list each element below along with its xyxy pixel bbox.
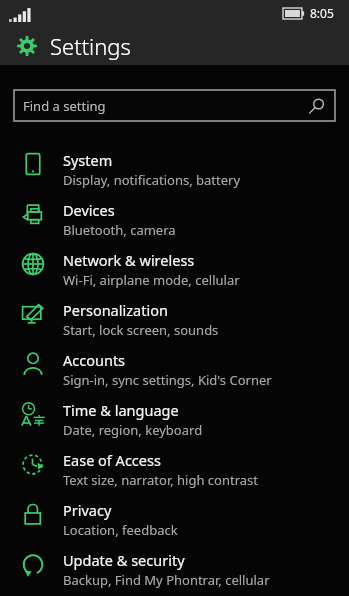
staticText: Display, notifications, battery <box>63 171 241 189</box>
staticText: Backup, Find My Phontrar, cellular <box>63 571 270 589</box>
staticText: Start, lock screen, sounds <box>63 321 219 339</box>
staticText: Wi-Fi, airplane mode, cellular <box>63 271 240 289</box>
staticText: Personalization <box>63 300 168 320</box>
staticText: Devices <box>63 200 115 220</box>
staticText: Privacy <box>63 500 112 520</box>
staticText: Update & security <box>63 550 185 570</box>
button[interactable]: Time & language <box>0 395 349 445</box>
button[interactable]: Update & security <box>0 545 349 595</box>
staticText: Accounts <box>63 350 126 370</box>
staticText: Time & language <box>63 400 179 420</box>
button[interactable]: Accounts <box>0 345 349 395</box>
staticText: Location, feedback <box>63 521 178 539</box>
staticText: Ease of Access <box>63 450 161 470</box>
staticText: Settings <box>50 31 131 61</box>
button[interactable]: Devices <box>0 195 349 245</box>
staticText: System <box>63 150 113 170</box>
staticText: Date, region, keyboard <box>63 421 203 439</box>
button[interactable]: Privacy <box>0 495 349 545</box>
staticText: Network & wireless <box>63 250 195 270</box>
button[interactable]: System <box>0 145 349 195</box>
staticText: Find a setting <box>23 97 106 115</box>
button[interactable]: Ease of Access <box>0 445 349 495</box>
staticText: 8:05 <box>310 5 334 21</box>
button[interactable]: Network & wireless <box>0 245 349 295</box>
button[interactable]: Find a setting <box>14 90 335 121</box>
button[interactable]: Personalization <box>0 295 349 345</box>
staticText: Sign-in, sync settings, Kid's Corner <box>63 371 272 389</box>
staticText: Bluetooth, camera <box>63 221 176 239</box>
staticText: Text size, narrator, high contrast <box>63 471 258 489</box>
